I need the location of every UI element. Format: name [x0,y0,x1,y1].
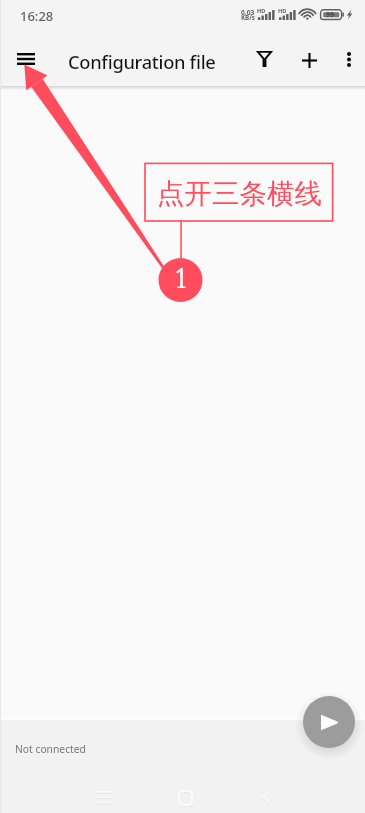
button[interactable]: Filter [242,37,286,81]
button[interactable]: Open navigation drawer [2,35,50,83]
staticText: Not connected [15,742,86,756]
button[interactable]: Start [303,696,355,748]
staticText: 1 [175,259,188,295]
staticText: HD [278,7,287,15]
staticText: 0.03 [241,8,255,17]
staticText: 99 [326,10,335,20]
staticText: 点开三条横线 [157,177,322,212]
staticText: HD [257,7,266,15]
button[interactable]: More options [329,39,365,79]
staticText: 16:28 [20,7,54,25]
staticText: Configuration file [68,49,216,74]
staticText: KB/s [241,13,255,21]
button[interactable]: Add [287,38,331,82]
